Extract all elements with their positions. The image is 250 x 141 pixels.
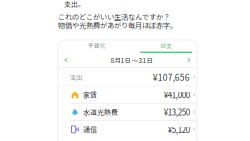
staticText: これのどこがいい生活なんですか？ bbox=[58, 11, 170, 22]
staticText: 支出。 bbox=[64, 0, 85, 9]
button[interactable]: 前の月 bbox=[61, 55, 71, 66]
staticText: 収支 bbox=[160, 42, 172, 50]
staticText: ¥107,656 bbox=[153, 71, 190, 83]
staticText: 予算化 bbox=[88, 42, 106, 50]
button[interactable]: 家賃 bbox=[58, 86, 197, 103]
button[interactable]: 収支 bbox=[131, 40, 201, 53]
staticText: ¥13,250 bbox=[164, 106, 190, 118]
staticText: ¥5,120 bbox=[168, 124, 190, 135]
staticText: 水道光熱費 bbox=[83, 107, 118, 117]
button[interactable]: 予算化 bbox=[62, 40, 131, 53]
staticText: 8月1日 〜 31日 bbox=[110, 56, 152, 65]
staticText: ¥41,000 bbox=[164, 89, 190, 101]
button[interactable]: 通信 bbox=[58, 121, 197, 138]
staticText: 家賃 bbox=[83, 90, 97, 100]
button[interactable]: 支出 bbox=[58, 68, 197, 86]
staticText: 支出 bbox=[70, 72, 82, 82]
button[interactable]: 水道光熱費 bbox=[58, 104, 197, 120]
staticText: 物価や光熱費があがり毎月ほぼ赤字。 bbox=[58, 20, 177, 30]
button[interactable]: 次の月 bbox=[184, 55, 194, 66]
staticText: 通信 bbox=[83, 124, 97, 134]
